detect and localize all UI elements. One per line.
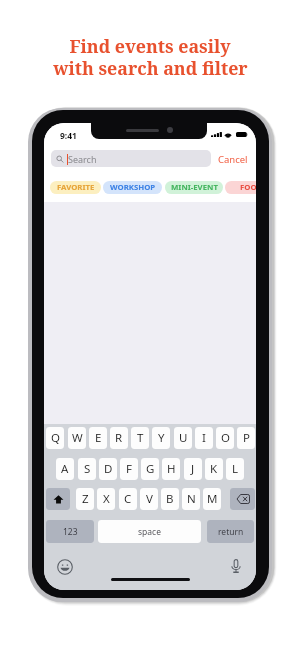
button[interactable]: E <box>89 427 107 449</box>
button[interactable]: S <box>78 458 96 480</box>
button[interactable]: return <box>207 520 254 543</box>
staticText: with search and filter <box>53 56 248 80</box>
staticText: B <box>166 491 174 507</box>
staticText: A <box>61 461 69 477</box>
staticText: Z <box>82 491 89 507</box>
button[interactable]: J <box>184 458 202 480</box>
button[interactable]: X <box>97 488 115 510</box>
staticText: E <box>95 430 102 446</box>
button[interactable]: Dictation <box>228 558 244 574</box>
staticText: Y <box>158 430 165 446</box>
button[interactable]: FAVORITE <box>50 181 101 194</box>
staticText: G <box>146 461 155 477</box>
staticText: W <box>72 430 83 446</box>
staticText: WORKSHOP <box>110 182 156 193</box>
staticText: D <box>104 461 113 477</box>
button[interactable]: I <box>195 427 213 449</box>
staticText: O <box>221 430 230 446</box>
staticText: N <box>187 491 196 507</box>
staticText: K <box>210 461 218 477</box>
button[interactable]: Cancel <box>218 153 248 166</box>
staticText: I <box>202 430 206 446</box>
button[interactable]: N <box>182 488 200 510</box>
button[interactable]: D <box>99 458 117 480</box>
staticText: space <box>138 526 161 538</box>
staticText: V <box>146 491 153 507</box>
staticText: 123 <box>63 526 78 538</box>
staticText: L <box>232 461 239 477</box>
button[interactable]: Backspace <box>230 488 255 510</box>
button[interactable]: FOOD <box>225 181 256 194</box>
button[interactable]: F <box>120 458 138 480</box>
staticText: H <box>167 461 176 477</box>
staticText: J <box>191 461 195 477</box>
staticText: MINI-EVENT <box>171 182 218 193</box>
staticText: C <box>124 491 132 507</box>
button[interactable]: P <box>237 427 255 449</box>
button[interactable]: V <box>140 488 158 510</box>
button[interactable]: K <box>205 458 223 480</box>
button[interactable]: C <box>119 488 137 510</box>
button[interactable]: MINI-EVENT <box>165 181 223 194</box>
staticText: FAVORITE <box>57 182 95 193</box>
staticText: Search <box>68 153 97 165</box>
button[interactable]: WORKSHOP <box>103 181 162 194</box>
staticText: FOOD <box>240 182 256 193</box>
staticText: P <box>243 430 250 446</box>
staticText: Cancel <box>218 153 248 166</box>
button[interactable]: H <box>162 458 180 480</box>
button[interactable]: Search <box>51 150 211 167</box>
staticText: T <box>137 430 144 446</box>
button[interactable]: Y <box>152 427 170 449</box>
button[interactable]: A <box>56 458 74 480</box>
staticText: return <box>218 526 244 538</box>
button[interactable]: Emoji keyboard <box>57 559 73 575</box>
staticText: R <box>115 430 123 446</box>
button[interactable]: R <box>110 427 128 449</box>
staticText: Q <box>51 430 60 446</box>
staticText: 9:41 <box>60 130 77 142</box>
staticText: M <box>207 491 218 507</box>
button[interactable]: L <box>226 458 244 480</box>
button[interactable]: Shift <box>46 488 70 510</box>
button[interactable]: W <box>68 427 86 449</box>
button[interactable]: M <box>203 488 221 510</box>
button[interactable]: 123 <box>46 520 94 543</box>
staticText: U <box>179 430 188 446</box>
button[interactable]: B <box>161 488 179 510</box>
button[interactable]: Q <box>46 427 64 449</box>
button[interactable]: O <box>216 427 234 449</box>
button[interactable]: G <box>141 458 159 480</box>
staticText: F <box>126 461 132 477</box>
staticText: S <box>84 461 91 477</box>
staticText: Find events easily <box>69 34 231 58</box>
staticText: X <box>103 491 110 507</box>
button[interactable]: T <box>131 427 149 449</box>
button[interactable]: U <box>174 427 192 449</box>
button[interactable]: space <box>98 520 201 543</box>
button[interactable]: Z <box>76 488 94 510</box>
